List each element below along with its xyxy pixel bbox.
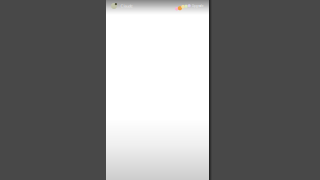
staticText: Claude bbox=[120, 3, 132, 9]
button[interactable]: Claude bbox=[106, 0, 134, 12]
button[interactable]: Upgrade bbox=[173, 0, 204, 12]
staticText: Upgrade bbox=[192, 4, 204, 8]
